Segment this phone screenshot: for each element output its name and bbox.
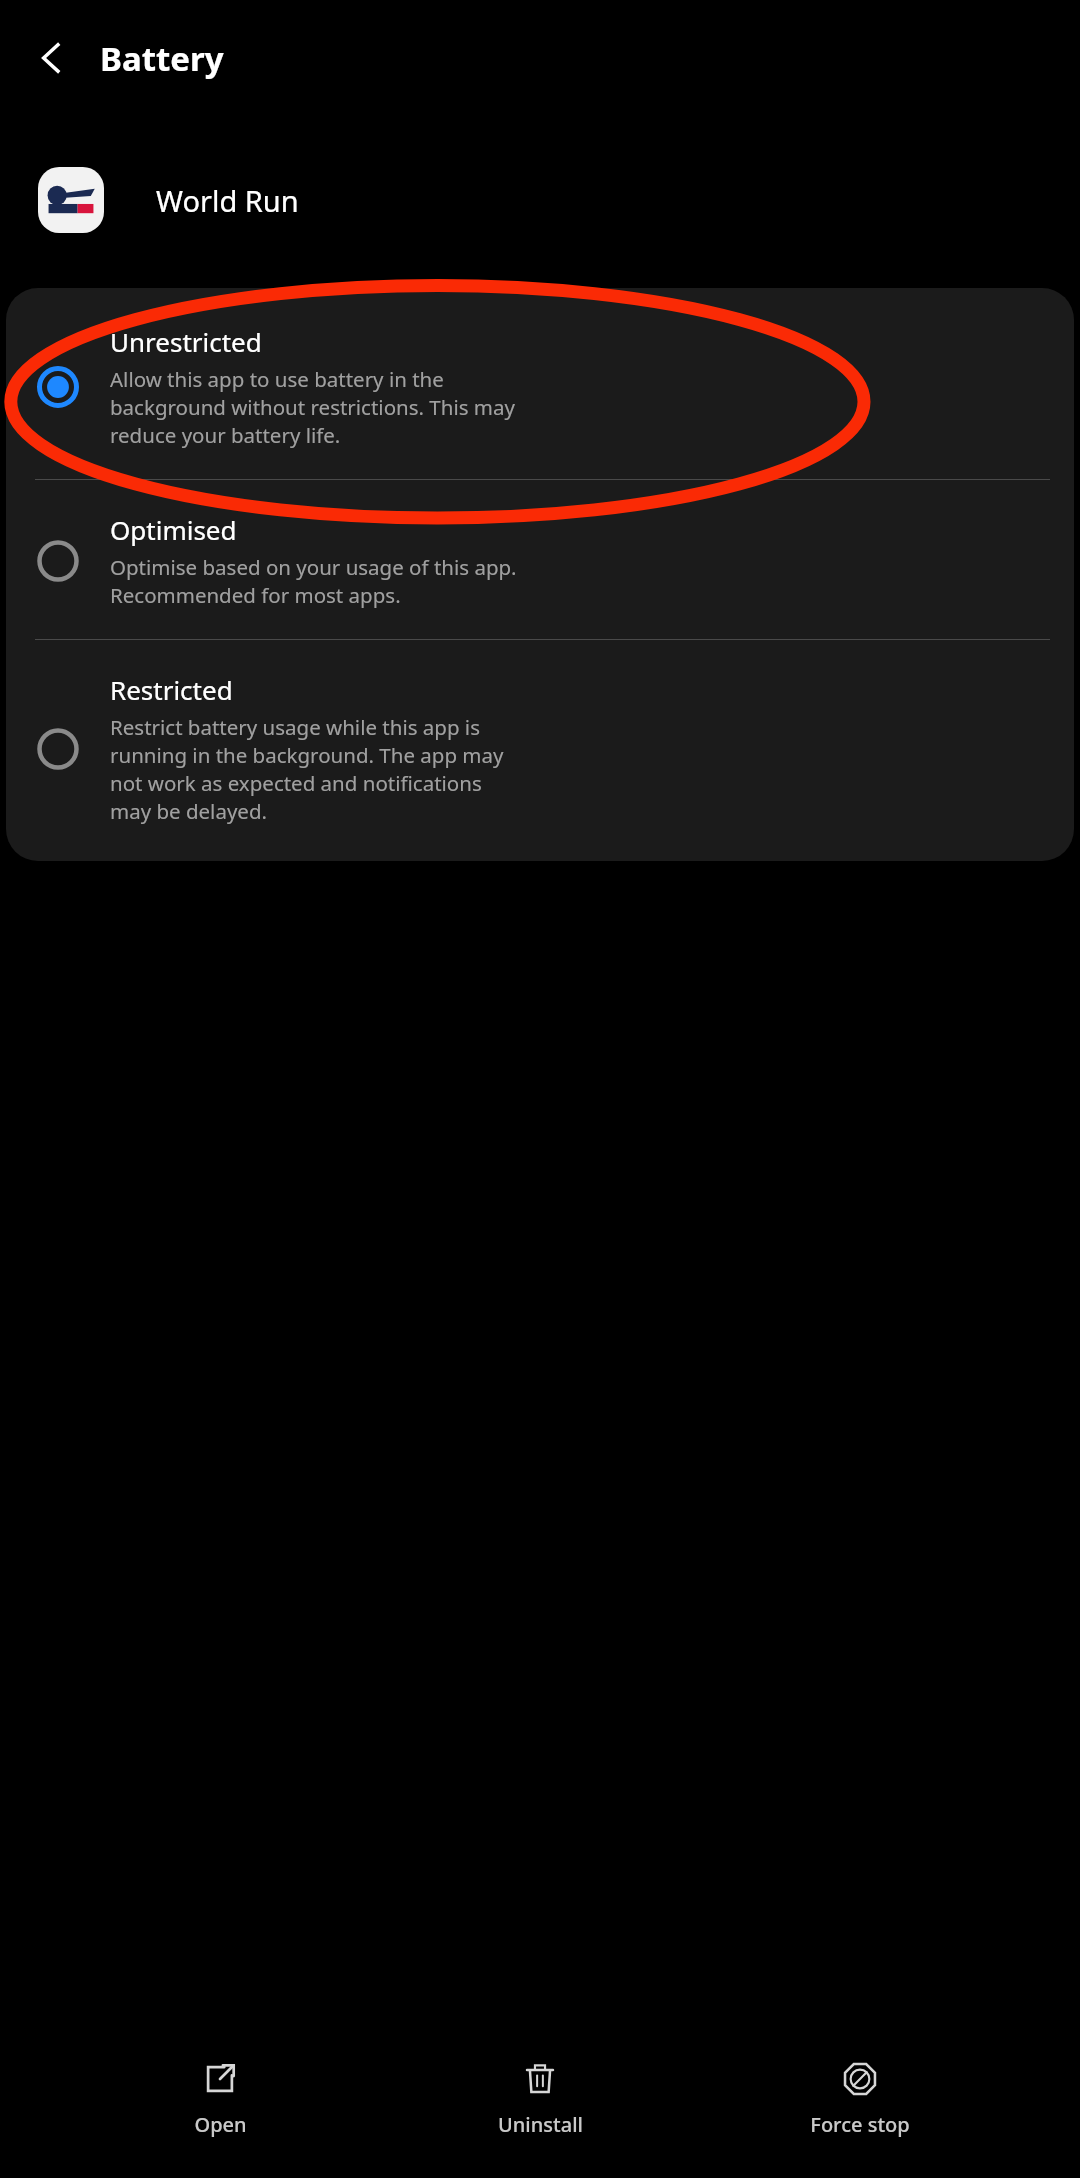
- button[interactable]: Optimised: [6, 480, 1074, 639]
- staticText: Force stop: [810, 2111, 910, 2138]
- staticText: Optimised: [110, 512, 237, 547]
- button[interactable]: Force stop: [760, 2055, 960, 2144]
- staticText: World Run: [156, 181, 299, 220]
- staticText: Uninstall: [498, 2111, 583, 2138]
- button[interactable]: Uninstall: [440, 2055, 640, 2144]
- staticText: Unrestricted: [110, 324, 262, 359]
- button[interactable]: Back: [20, 26, 84, 90]
- staticText: Battery: [100, 36, 224, 81]
- button[interactable]: Restricted: [6, 640, 1074, 861]
- staticText: Restricted: [110, 672, 233, 707]
- staticText: Restrict battery usage while this app is…: [110, 713, 504, 825]
- staticText: Optimise based on your usage of this app…: [110, 553, 517, 609]
- button[interactable]: World Run: [0, 160, 1080, 240]
- staticText: Allow this app to use battery in the bac…: [110, 365, 515, 449]
- staticText: Open: [194, 2111, 247, 2138]
- button[interactable]: Open: [120, 2055, 320, 2144]
- button[interactable]: Unrestricted: [6, 288, 1074, 479]
